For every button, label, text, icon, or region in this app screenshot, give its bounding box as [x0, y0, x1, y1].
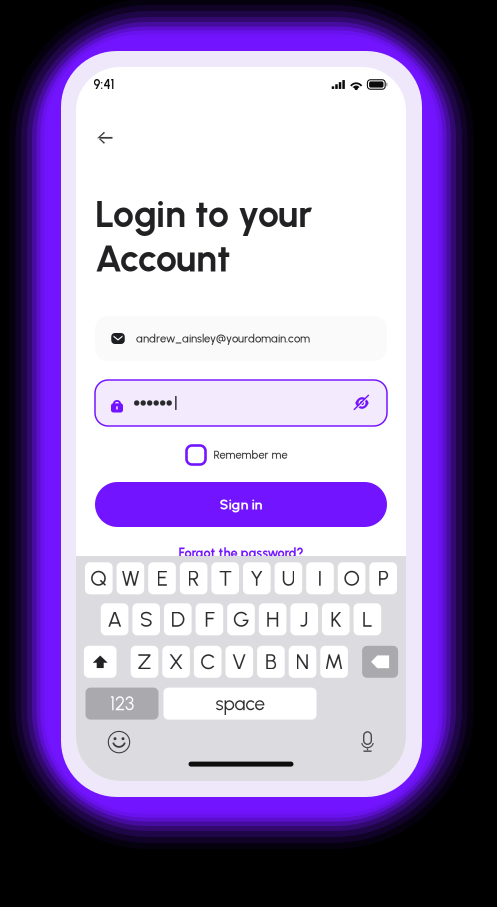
button[interactable]: D — [164, 603, 192, 635]
button[interactable]: M — [320, 646, 348, 678]
staticText: R — [188, 565, 200, 591]
staticText: Z — [137, 649, 151, 675]
button[interactable]: Shift — [84, 646, 116, 678]
button[interactable]: Z — [131, 646, 158, 678]
button[interactable]: F — [196, 603, 223, 635]
button[interactable]: Delete — [362, 646, 398, 678]
staticText: Forgot the password? — [178, 545, 303, 561]
staticText: Y — [250, 565, 263, 591]
button[interactable]: W — [117, 562, 144, 594]
staticText: C — [200, 649, 215, 675]
staticText: J — [300, 606, 309, 632]
button[interactable]: Remember me — [186, 445, 287, 464]
button[interactable]: Forgot the password? — [178, 545, 303, 561]
staticText: F — [204, 606, 214, 632]
staticText: Account — [95, 236, 230, 281]
staticText: I — [317, 565, 322, 591]
button[interactable]: S — [132, 603, 160, 635]
staticText: W — [121, 565, 139, 591]
button[interactable]: R — [180, 562, 207, 594]
button[interactable]: Emoji keyboard — [107, 731, 130, 754]
staticText: M — [325, 649, 344, 675]
button[interactable]: K — [322, 603, 350, 635]
button[interactable]: U — [275, 562, 302, 594]
button[interactable]: T — [211, 562, 239, 594]
staticText: L — [362, 606, 373, 632]
button[interactable]: Q — [85, 562, 113, 594]
button[interactable]: C — [194, 646, 221, 678]
button[interactable]: Sign in — [95, 482, 387, 527]
button[interactable]: Back — [85, 121, 125, 155]
button[interactable]: L — [354, 603, 381, 635]
staticText: H — [266, 606, 279, 632]
staticText: K — [330, 606, 341, 632]
button[interactable]: Dictate — [360, 732, 374, 752]
staticText: N — [295, 649, 309, 675]
button[interactable]: Y — [243, 562, 271, 594]
staticText: V — [232, 649, 246, 675]
button[interactable]: O — [338, 562, 365, 594]
staticText: X — [169, 649, 183, 675]
button[interactable]: H — [259, 603, 286, 635]
staticText: Sign in — [219, 496, 262, 513]
button[interactable]: X — [162, 646, 190, 678]
button[interactable]: 123 — [85, 688, 158, 720]
button[interactable]: I — [306, 562, 334, 594]
button[interactable]: V — [225, 646, 253, 678]
staticText: S — [140, 606, 153, 632]
staticText: U — [281, 565, 295, 591]
staticText: P — [378, 565, 389, 591]
staticText: B — [265, 649, 277, 675]
staticText: Login to your — [95, 192, 312, 236]
staticText: G — [233, 606, 249, 632]
staticText: andrew_ainsley@yourdomain.com — [136, 332, 310, 345]
staticText: 9:41 — [93, 77, 114, 92]
staticText: Remember me — [213, 448, 287, 462]
button[interactable]: J — [290, 603, 318, 635]
staticText: O — [344, 565, 360, 591]
staticText: D — [171, 606, 185, 632]
button[interactable]: A — [101, 603, 128, 635]
staticText: space — [215, 692, 264, 715]
button[interactable]: P — [369, 562, 397, 594]
staticText: E — [156, 565, 167, 591]
staticText: 123 — [110, 692, 134, 715]
staticText: T — [219, 565, 232, 591]
staticText: A — [108, 606, 122, 632]
button[interactable]: N — [289, 646, 316, 678]
staticText: Q — [90, 565, 107, 591]
button[interactable]: B — [257, 646, 285, 678]
button[interactable]: G — [227, 603, 255, 635]
button[interactable]: E — [148, 562, 176, 594]
button[interactable]: space — [163, 688, 316, 720]
